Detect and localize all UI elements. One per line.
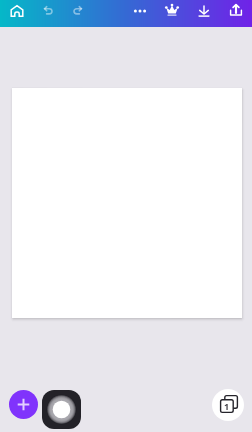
staticText: 1 [224, 400, 230, 412]
button[interactable]: Undo [35, 0, 61, 24]
button[interactable]: Colour [42, 390, 81, 429]
button[interactable]: Pages [212, 389, 244, 421]
button[interactable]: More options [127, 0, 153, 24]
button[interactable]: Add [9, 390, 38, 419]
button[interactable]: Home [4, 0, 30, 24]
button[interactable]: Share [223, 0, 249, 23]
button[interactable]: Download [191, 0, 217, 24]
button[interactable]: Redo [65, 0, 91, 24]
button[interactable]: Upgrade to Pro [159, 0, 185, 23]
